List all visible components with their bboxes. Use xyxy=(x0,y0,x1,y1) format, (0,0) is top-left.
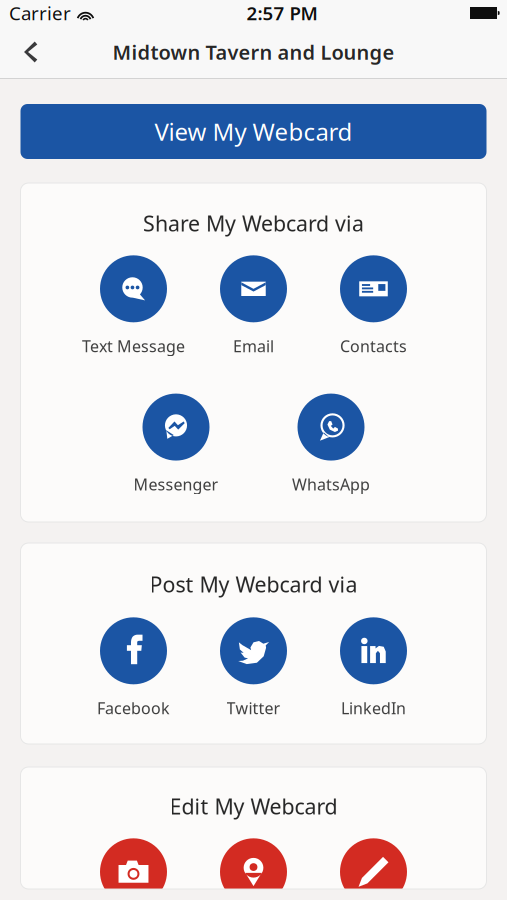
button[interactable]: WhatsApp xyxy=(253,394,408,495)
button[interactable]: Contacts xyxy=(313,255,433,356)
button[interactable]: LinkedIn xyxy=(313,617,433,718)
staticText: Carrier xyxy=(9,1,71,25)
staticText: WhatsApp xyxy=(292,474,370,495)
staticText: Twitter xyxy=(226,697,280,718)
button[interactable]: Twitter xyxy=(193,617,313,718)
staticText: Facebook xyxy=(97,697,170,718)
button[interactable]: Back xyxy=(9,30,53,74)
staticText: Edit My Webcard xyxy=(169,792,337,820)
staticText: LinkedIn xyxy=(341,697,406,718)
staticText: Midtown Tavern and Lounge xyxy=(112,39,394,65)
staticText: View My Webcard xyxy=(154,116,352,147)
button[interactable]: Messenger xyxy=(98,394,253,495)
staticText: Share My Webcard via xyxy=(143,209,364,237)
button[interactable]: Text Message xyxy=(73,255,193,356)
staticText: Messenger xyxy=(133,474,218,495)
staticText: 2:57 PM xyxy=(246,1,317,25)
button[interactable]: Photo xyxy=(73,838,193,900)
button[interactable]: Location xyxy=(193,838,313,900)
staticText: Contacts xyxy=(340,335,407,356)
staticText: Email xyxy=(233,335,274,356)
staticText: Text Message xyxy=(82,335,185,356)
button[interactable]: Edit xyxy=(313,838,433,900)
button[interactable]: View My Webcard xyxy=(20,104,486,159)
button[interactable]: Facebook xyxy=(73,617,193,718)
staticText: Post My Webcard via xyxy=(149,570,357,598)
button[interactable]: Email xyxy=(193,255,313,356)
